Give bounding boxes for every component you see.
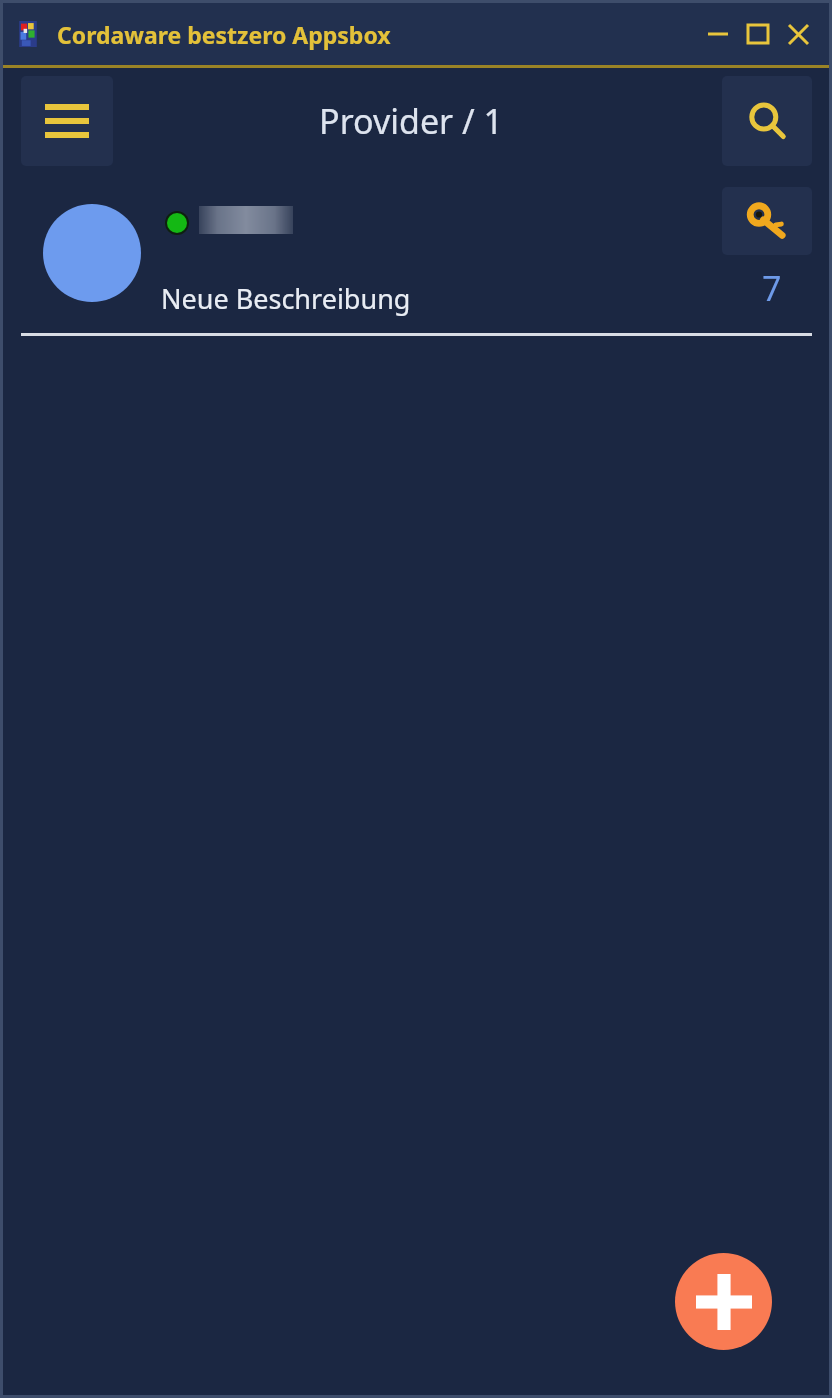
staticText: Provider / 1 [319, 98, 503, 144]
button[interactable]: Minimize [701, 14, 735, 54]
button[interactable]: Close [781, 14, 815, 54]
button[interactable]: Neue Beschreibung [3, 173, 829, 333]
staticText: Neue Beschreibung [161, 280, 411, 317]
button[interactable]: Search [722, 76, 812, 166]
button[interactable]: Maximize [741, 14, 775, 54]
button[interactable]: Key [722, 187, 812, 255]
staticText: 7 [762, 265, 782, 311]
button[interactable]: Add [675, 1253, 772, 1350]
button[interactable]: Menu [21, 76, 113, 166]
staticText: Cordaware bestzero Appsbox [57, 19, 391, 50]
